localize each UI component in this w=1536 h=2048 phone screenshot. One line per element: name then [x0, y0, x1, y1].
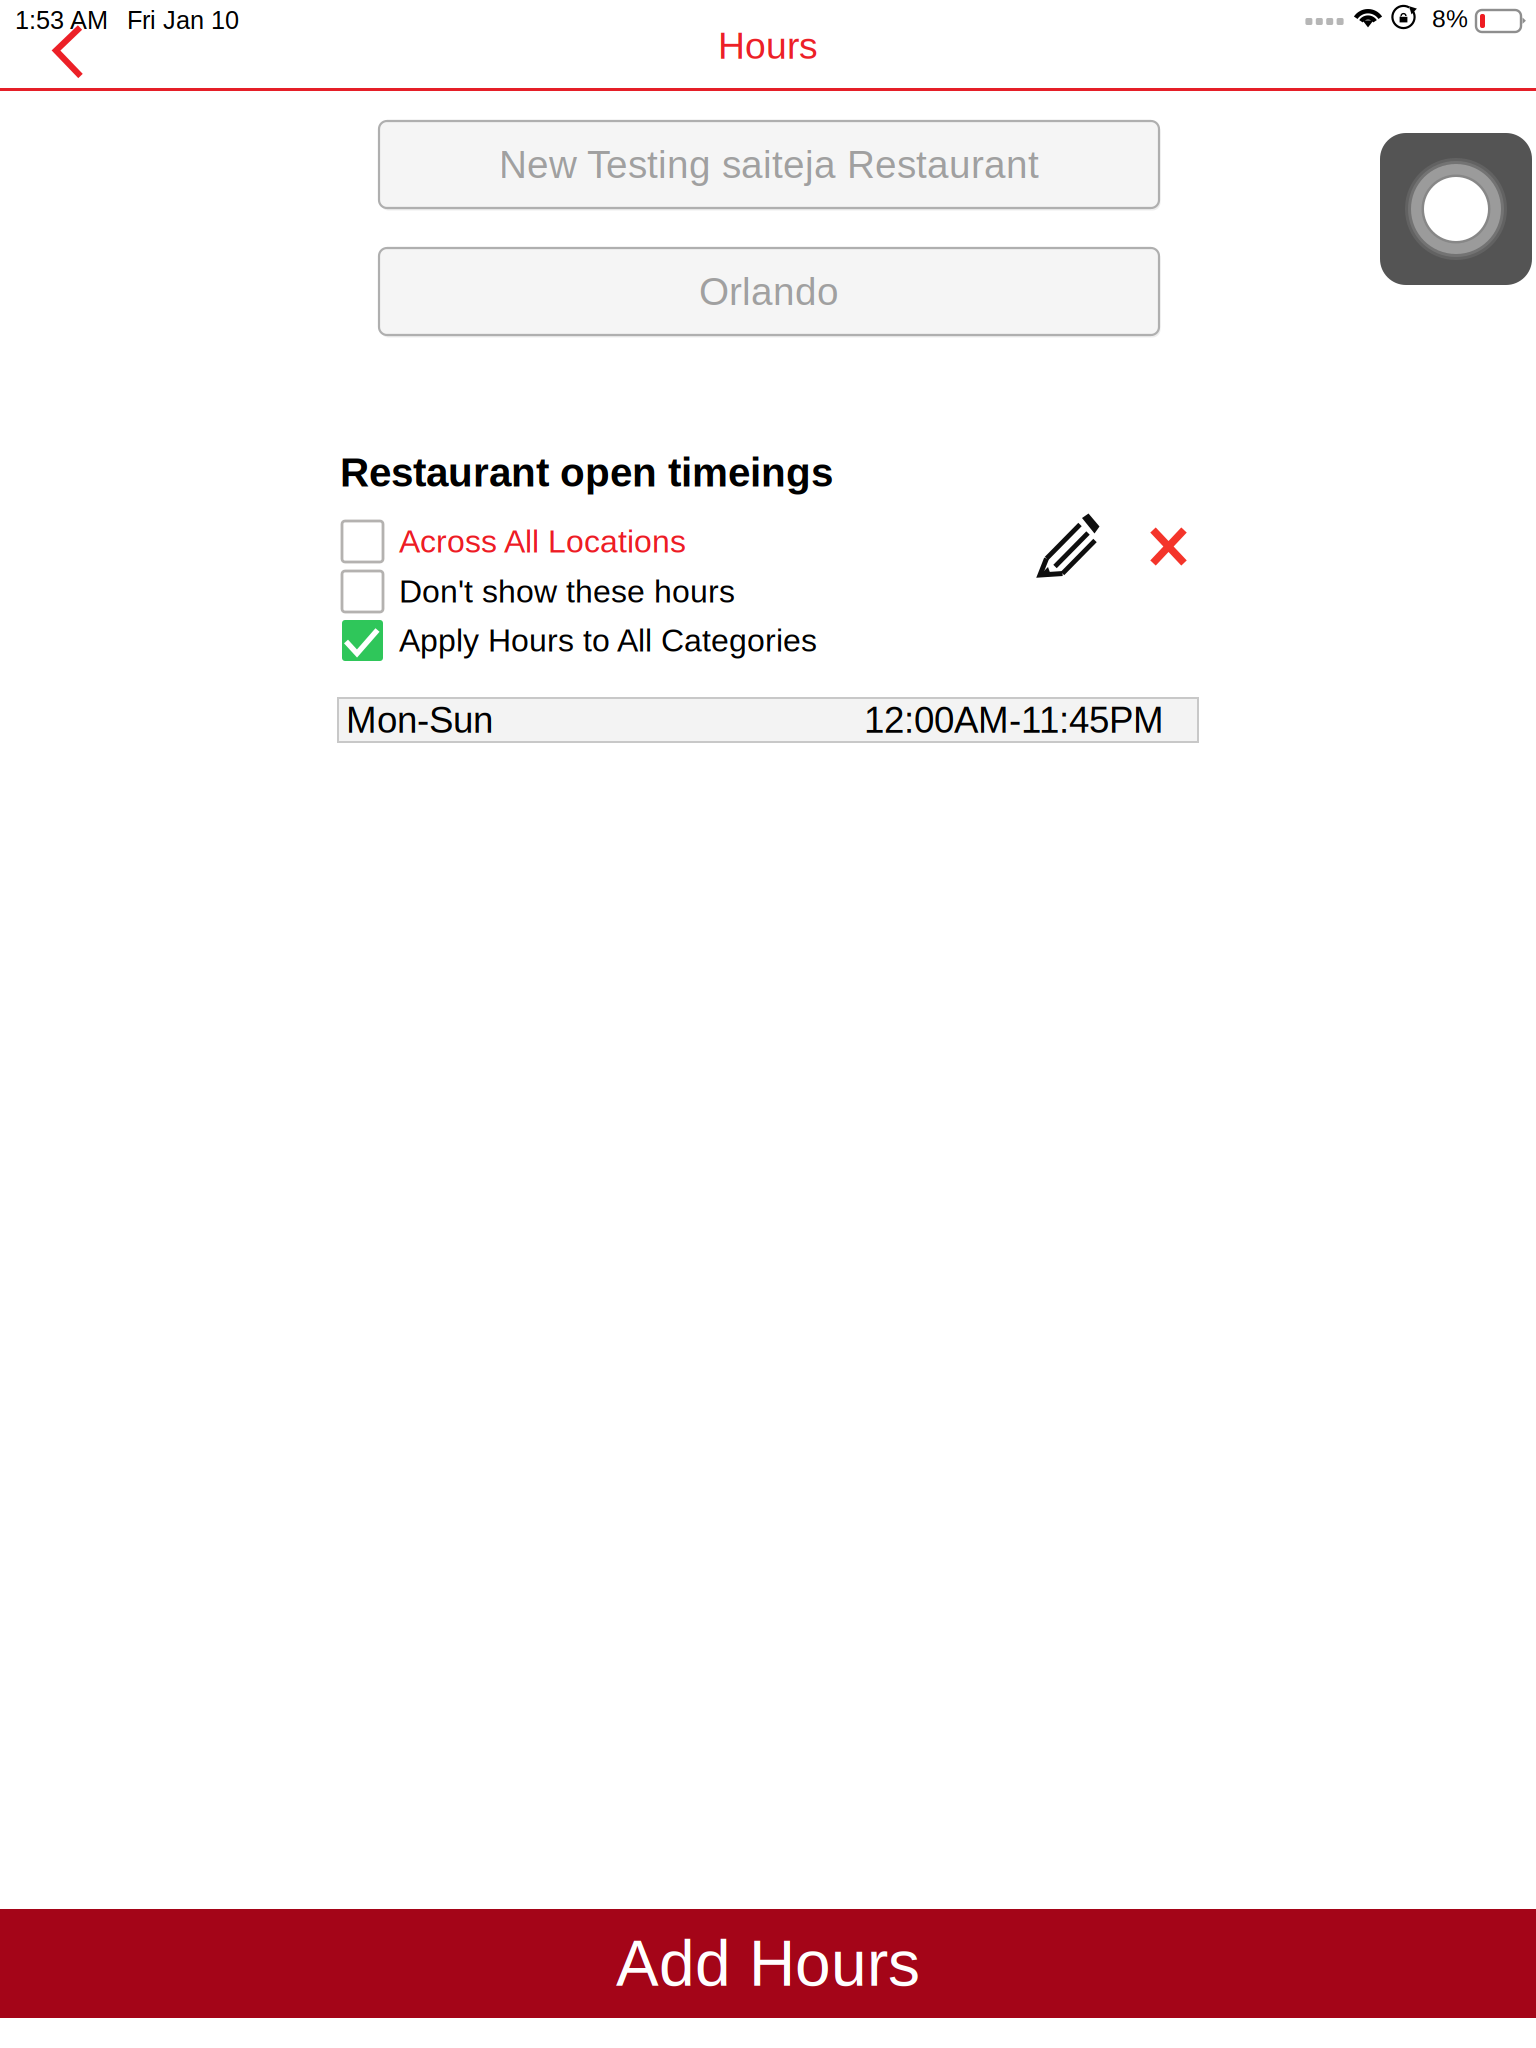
button[interactable]: New Testing saiteja Restaurant: [379, 121, 1161, 211]
staticText: Mon-Sun: [346, 699, 493, 740]
button[interactable]: Mon-Sun: [338, 698, 1198, 742]
staticText: 12:00AM-11:45PM: [864, 699, 1164, 740]
staticText: Add Hours: [616, 1928, 920, 1999]
staticText: Orlando: [699, 270, 839, 313]
button[interactable]: Add Hours: [0, 1909, 1536, 2018]
button[interactable]: Don't show these hours: [342, 571, 869, 612]
button[interactable]: Apply Hours to All Categories: [342, 620, 869, 661]
button[interactable]: Back: [38, 15, 103, 89]
button[interactable]: Edit hours: [1037, 513, 1100, 578]
staticText: Apply Hours to All Categories: [399, 623, 817, 658]
staticText: 8%: [1432, 5, 1468, 33]
staticText: New Testing saiteja Restaurant: [499, 143, 1039, 186]
staticText: Restaurant open timeings: [340, 450, 833, 495]
staticText: 1:53 AM: [15, 6, 108, 34]
button[interactable]: Across All Locations: [342, 521, 869, 562]
button[interactable]: Orlando: [379, 248, 1161, 338]
button[interactable]: Delete hours: [1149, 526, 1188, 567]
staticText: Hours: [718, 25, 818, 67]
staticText: Don't show these hours: [399, 574, 735, 609]
staticText: Across All Locations: [399, 524, 686, 559]
staticText: Fri Jan 10: [127, 6, 239, 34]
button[interactable]: AssistiveTouch: [1380, 133, 1532, 285]
